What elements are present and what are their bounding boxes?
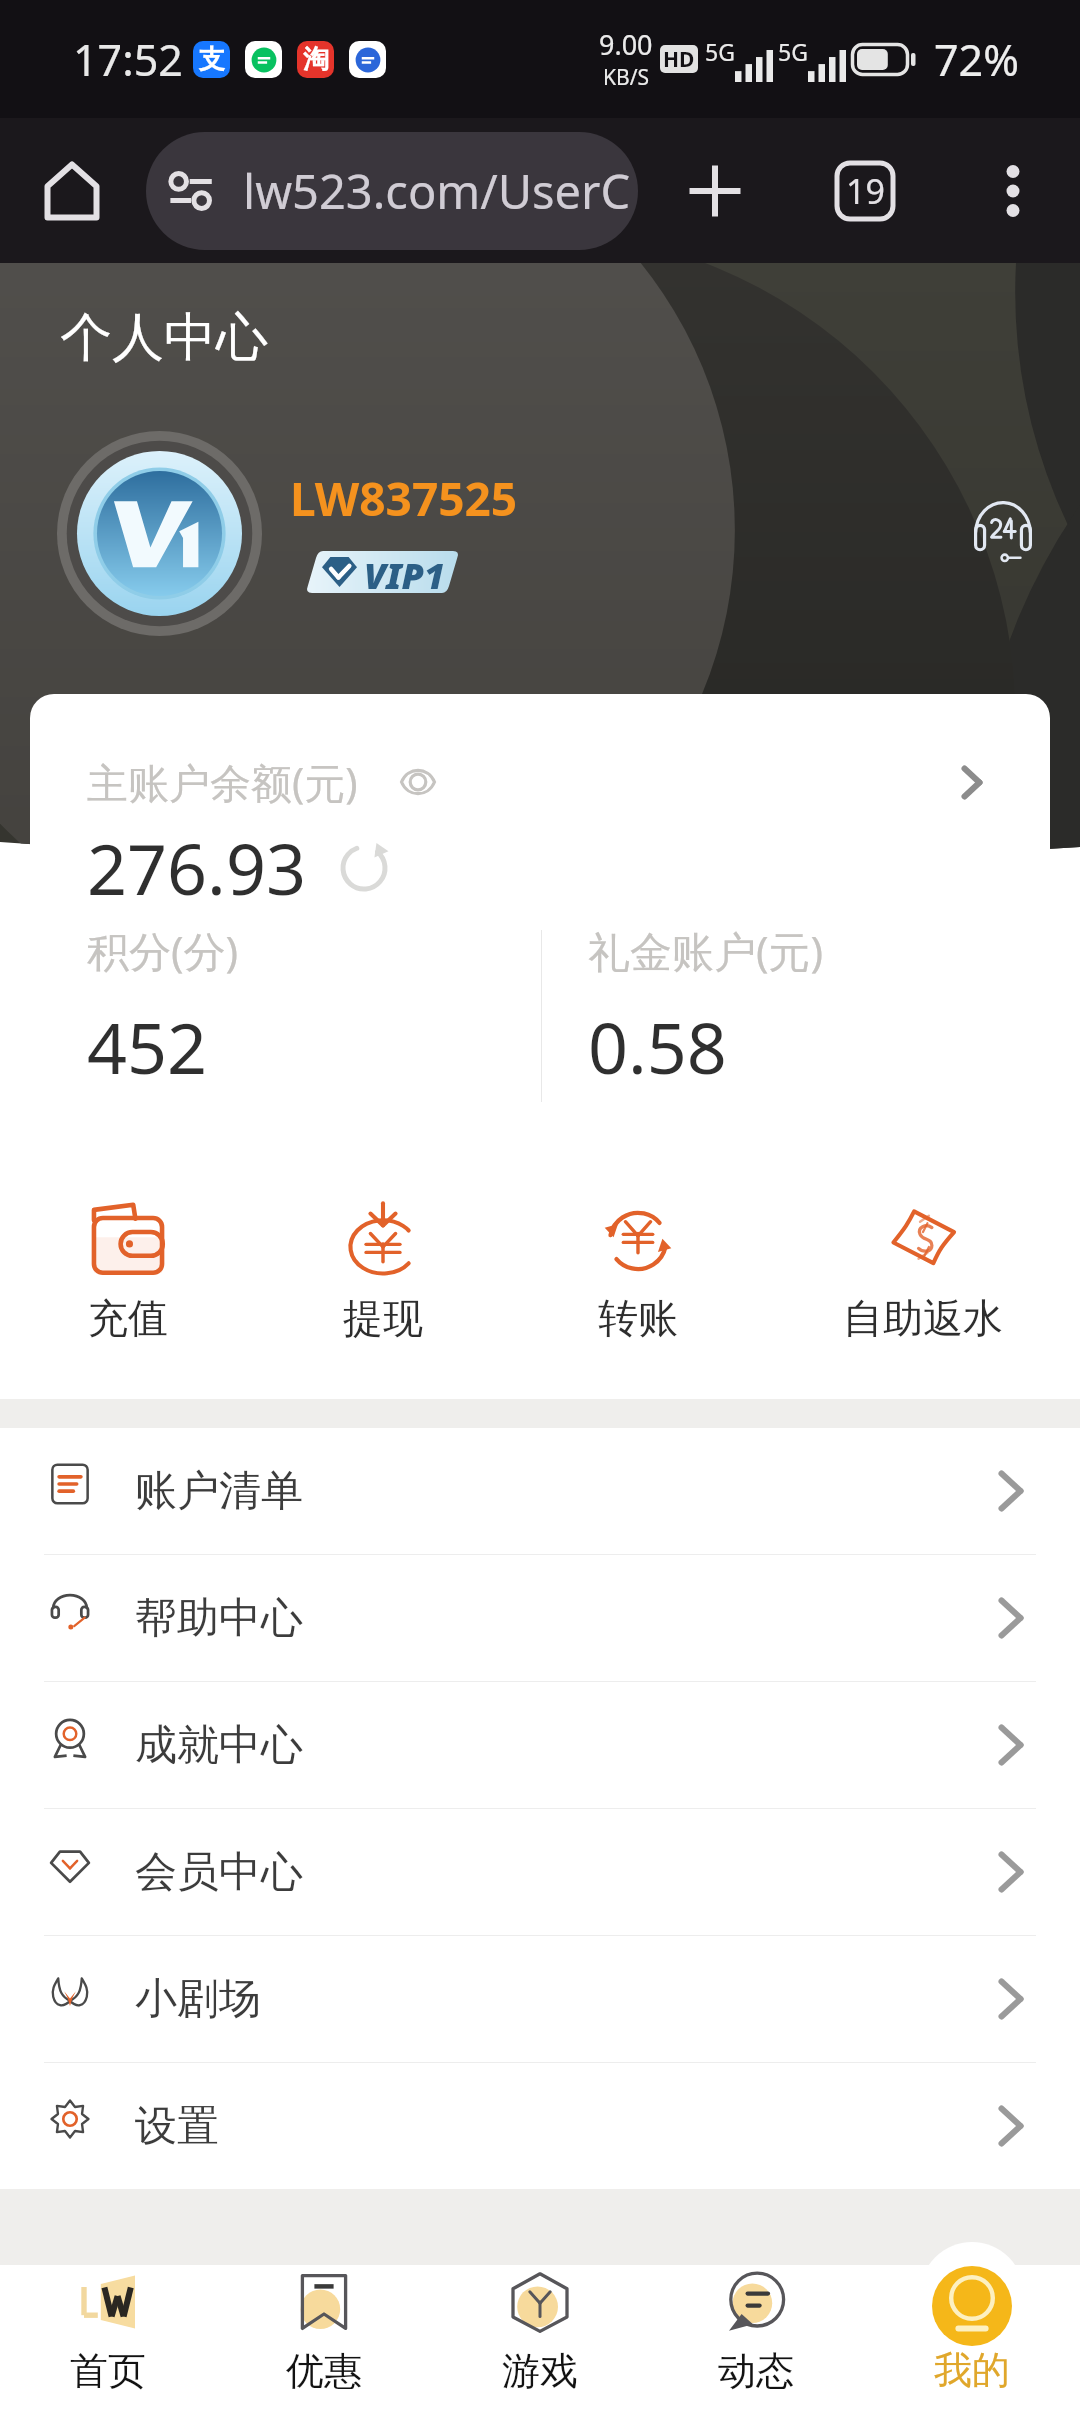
staticText: 个人中心 [60,305,268,371]
staticText: 276.93 [87,820,306,915]
button[interactable]: 小剧场 [0,1936,1080,2062]
button[interactable]: 我的 [864,2265,1080,2412]
staticText: 0.58 [588,999,727,1094]
staticText: 设置 [135,2100,219,2153]
staticText: 淘 [303,43,329,76]
staticText: 首页 [70,2347,146,2395]
button[interactable]: 转账 [510,1145,765,1399]
button[interactable]: New tab [665,141,765,241]
staticText: 452 [87,999,208,1094]
staticText: 优惠 [286,2347,362,2395]
button[interactable]: 游戏 [432,2265,648,2412]
button[interactable]: lw523.com/UserC [146,132,638,250]
staticText: 72% [934,30,1019,89]
staticText: 主账户余额(元) [87,754,358,810]
staticText: KB/S [603,63,649,92]
staticText: 游戏 [502,2347,578,2395]
staticText: 19 [846,168,885,214]
staticText: 成就中心 [135,1719,303,1772]
staticText: 动态 [718,2347,794,2395]
button[interactable]: 设置 [0,2063,1080,2189]
staticText: 帮助中心 [135,1592,303,1645]
staticText: 5G [778,36,808,67]
staticText: 自助返水 [843,1293,1003,1343]
button[interactable]: 账户清单 [0,1428,1080,1554]
button[interactable]: 动态 [648,2265,864,2412]
staticText: HD [663,45,695,73]
staticText: 小剧场 [135,1973,261,2026]
button[interactable]: 充值 [0,1145,255,1399]
staticText: 我的 [934,2346,1010,2394]
button[interactable]: 帮助中心 [0,1555,1080,1681]
staticText: 礼金账户(元) [588,922,824,979]
staticText: VIP1 [364,551,445,593]
button[interactable]: 会员中心 [0,1809,1080,1935]
staticText: 充值 [88,1293,168,1343]
staticText: 17:52 [73,30,183,89]
button[interactable]: 首页 [0,2265,216,2412]
staticText: 5G [705,36,735,67]
staticText: 9.00 [599,26,653,63]
button[interactable]: Customer service [964,491,1042,569]
staticText: 提现 [343,1293,423,1343]
staticText: lw523.com/UserC [243,159,631,223]
button[interactable]: Tabs [815,141,915,241]
button[interactable]: 主账户余额(元) [30,694,1050,1145]
staticText: LW837525 [290,467,518,530]
staticText: 积分(分) [87,922,239,979]
button[interactable]: 优惠 [216,2265,432,2412]
staticText: 转账 [598,1293,678,1343]
button[interactable]: 提现 [255,1145,510,1399]
button[interactable]: Home [22,136,122,246]
staticText: 账户清单 [135,1465,303,1518]
button[interactable]: 成就中心 [0,1682,1080,1808]
button[interactable]: More options [968,146,1058,236]
staticText: 支 [199,43,225,76]
staticText: 会员中心 [135,1846,303,1899]
button[interactable]: 自助返水 [765,1145,1080,1399]
